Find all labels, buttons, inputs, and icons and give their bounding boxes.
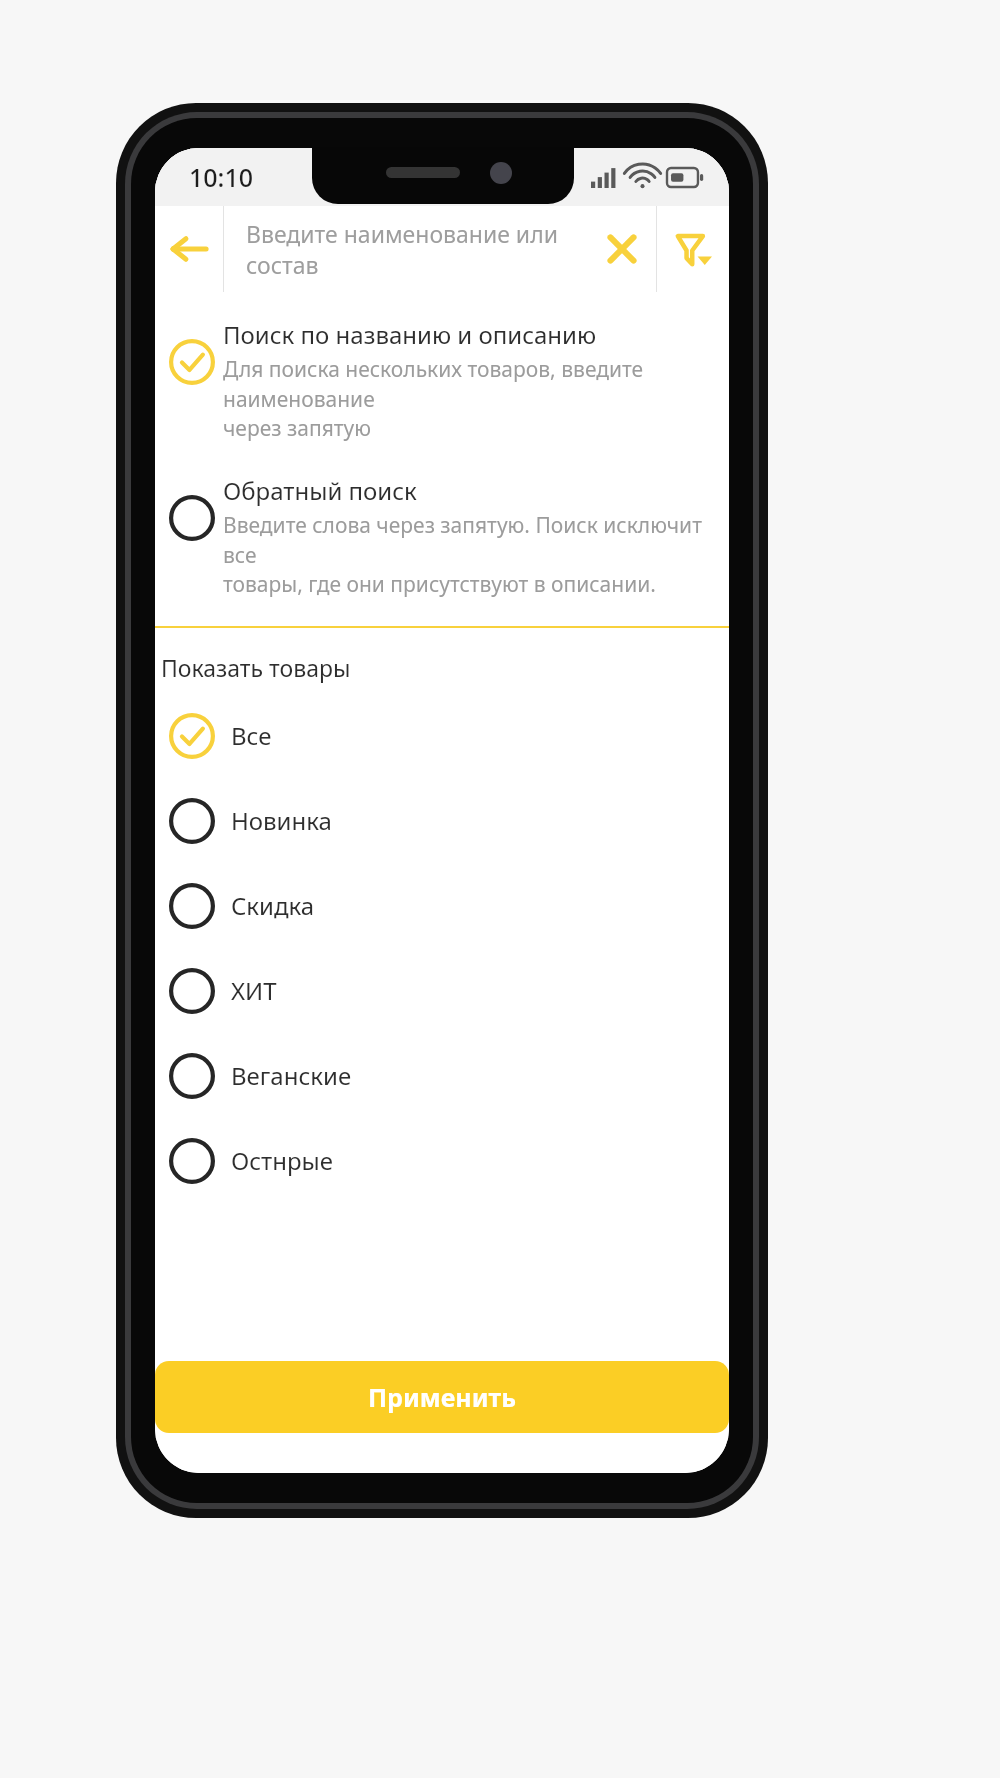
button[interactable]: Применить: [155, 1361, 729, 1433]
staticText: Поиск по названию и описанию: [223, 318, 597, 351]
button[interactable]: Back: [155, 206, 223, 292]
button[interactable]: Обратный поиск: [155, 468, 729, 600]
staticText: Все: [231, 719, 272, 752]
button[interactable]: Поиск по названию и описанию: [155, 312, 729, 444]
button[interactable]: Все: [155, 693, 729, 778]
staticText: Скидка: [231, 889, 315, 922]
staticText: 10:10: [189, 160, 254, 194]
staticText: Веганские: [231, 1059, 352, 1092]
button[interactable]: Новинка: [155, 778, 729, 863]
staticText: ХИТ: [231, 974, 277, 1007]
staticText: Применить: [368, 1380, 516, 1414]
staticText: Показать товары: [161, 652, 351, 683]
button[interactable]: Filter: [657, 206, 729, 292]
button[interactable]: Clear: [588, 206, 656, 292]
staticText: Новинка: [231, 804, 332, 837]
staticText: Введите наименование или состав: [246, 218, 588, 280]
staticText: Остнрые: [231, 1144, 334, 1177]
staticText: Введите слова через запятую. Поиск исклю…: [223, 511, 723, 598]
staticText: Обратный поиск: [223, 474, 417, 507]
staticText: Для поиска нескольких товаров, введите н…: [223, 355, 723, 442]
button[interactable]: Скидка: [155, 863, 729, 948]
button[interactable]: Остнрые: [155, 1118, 729, 1203]
button[interactable]: ХИТ: [155, 948, 729, 1033]
button[interactable]: Введите наименование или состав: [224, 206, 588, 292]
button[interactable]: Веганские: [155, 1033, 729, 1118]
